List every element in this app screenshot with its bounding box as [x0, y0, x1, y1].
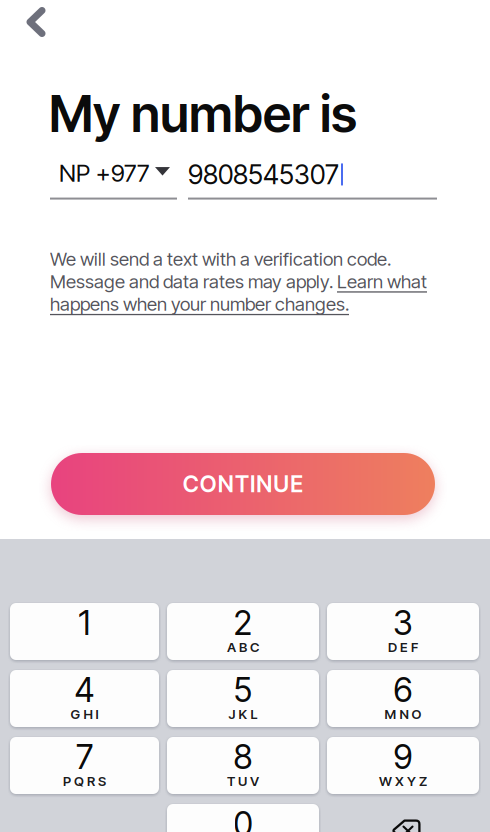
staticText: T U V	[227, 773, 259, 789]
staticText: NP +977	[59, 158, 149, 187]
button[interactable]: 4	[10, 670, 159, 727]
button[interactable]: 5	[167, 670, 319, 727]
button[interactable]: 6	[327, 670, 479, 727]
staticText: CONTINUE	[183, 470, 303, 498]
staticText: P Q R S	[63, 773, 106, 789]
button[interactable]: 1	[10, 603, 159, 660]
staticText: 9	[393, 737, 412, 777]
staticText: 5	[233, 670, 252, 710]
button[interactable]: 3	[327, 603, 479, 660]
staticText: G H I	[70, 706, 98, 722]
staticText: A B C	[227, 639, 259, 655]
staticText: 1	[78, 603, 90, 643]
button[interactable]: NP +977	[50, 158, 177, 199]
staticText: My number is	[49, 83, 357, 144]
button[interactable]: 0	[167, 804, 319, 832]
button[interactable]: 9	[327, 737, 479, 794]
button[interactable]: CONTINUE	[51, 453, 435, 515]
staticText: W X Y Z	[379, 773, 427, 789]
button[interactable]: 7	[10, 737, 159, 794]
button[interactable]: Back	[0, 0, 62, 49]
staticText: M N O	[384, 706, 421, 722]
staticText: 0	[233, 804, 252, 832]
button[interactable]: Delete	[327, 804, 479, 832]
staticText: 4	[74, 670, 94, 710]
staticText: 7	[76, 737, 93, 777]
staticText: J K L	[228, 706, 257, 722]
button[interactable]: 8	[167, 737, 319, 794]
staticText: 3	[393, 603, 413, 643]
staticText: 2	[233, 603, 252, 643]
staticText: We will send a text with a verification …	[50, 248, 427, 315]
button[interactable]: 2	[167, 603, 319, 660]
staticText: 9808545307	[188, 158, 339, 191]
staticText: 6	[393, 670, 412, 710]
staticText: D E F	[388, 639, 418, 655]
staticText: 8	[233, 737, 252, 777]
